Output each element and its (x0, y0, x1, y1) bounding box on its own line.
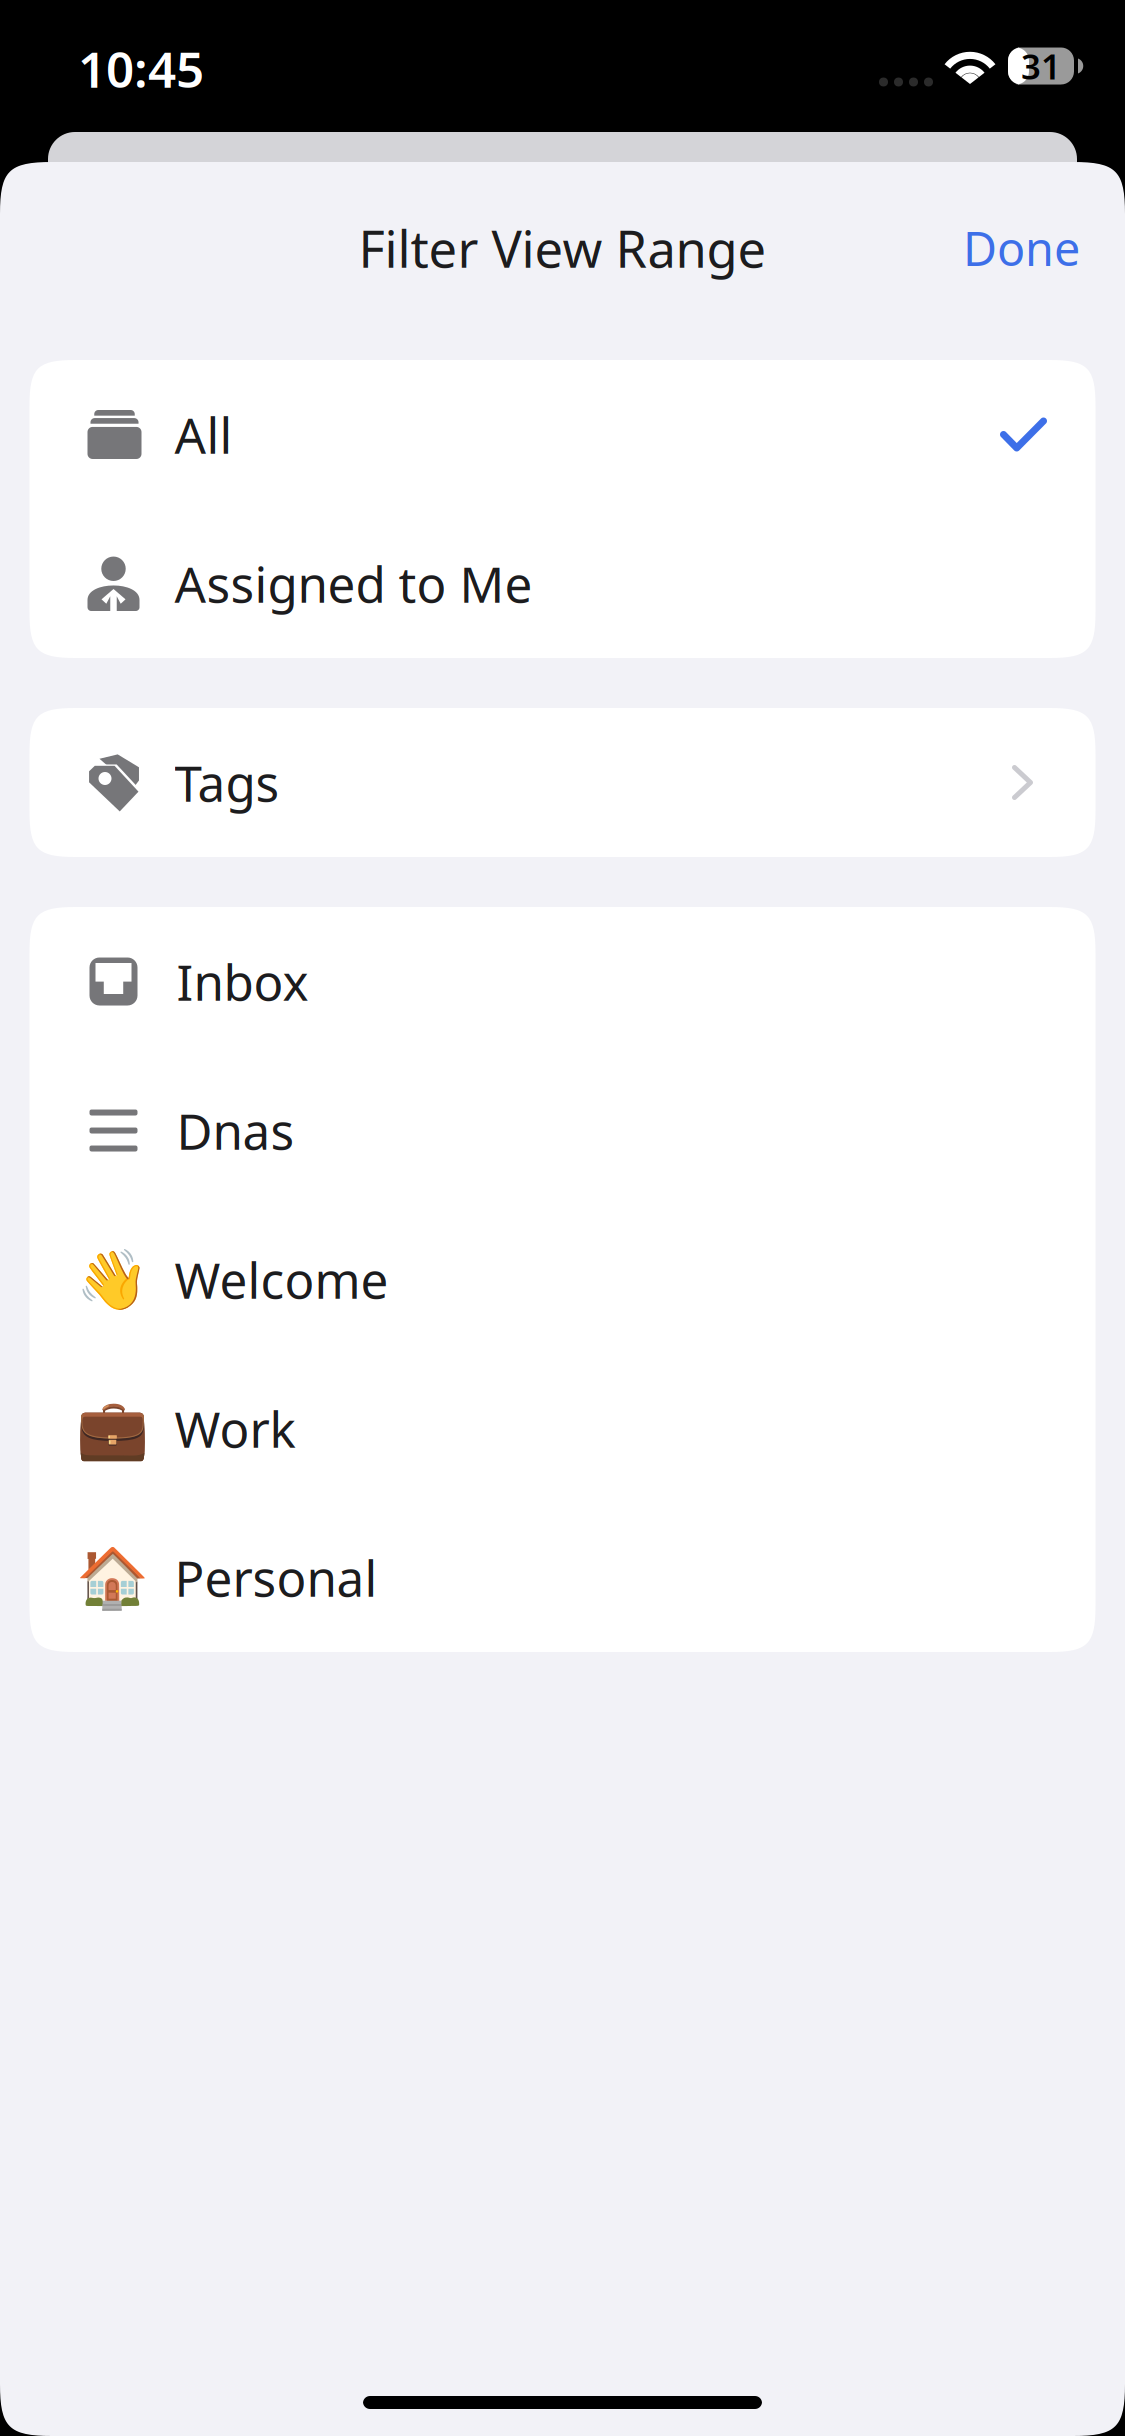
staticText: 10:45 (78, 36, 204, 101)
button[interactable]: Tags (29, 708, 1095, 857)
button[interactable]: Done (963, 217, 1125, 279)
staticText: Tags (174, 750, 279, 815)
button[interactable]: 👋 (29, 1205, 1095, 1354)
button[interactable]: Dnas (29, 1056, 1095, 1205)
staticText: Work (174, 1396, 295, 1461)
staticText: Inbox (176, 949, 308, 1014)
staticText: Personal (174, 1545, 377, 1610)
button[interactable]: Assigned to Me (29, 509, 1095, 658)
button[interactable]: All (29, 360, 1095, 509)
button[interactable]: 💼 (29, 1354, 1095, 1503)
staticText: Dnas (176, 1098, 294, 1163)
button[interactable]: 🏠 (29, 1503, 1095, 1652)
staticText: Done (963, 217, 1080, 279)
staticText: All (174, 402, 232, 467)
staticText: 💼 (75, 1395, 148, 1462)
button[interactable]: Inbox (29, 907, 1095, 1056)
staticText: 👋 (75, 1246, 148, 1313)
staticText: 🏠 (75, 1544, 148, 1611)
staticText: Assigned to Me (174, 551, 532, 616)
staticText: 31 (1021, 43, 1061, 89)
staticText: Filter View Range (358, 214, 766, 282)
staticText: Welcome (174, 1247, 388, 1312)
